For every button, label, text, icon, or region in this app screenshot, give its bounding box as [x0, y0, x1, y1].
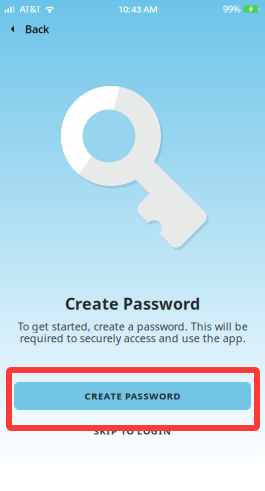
- staticText: CREATE PASSWORD: [84, 390, 181, 402]
- staticText: Create Password: [65, 293, 200, 314]
- staticText: Back: [25, 22, 49, 36]
- staticText: AT&T: [19, 3, 40, 15]
- button[interactable]: CREATE PASSWORD: [14, 382, 251, 410]
- button[interactable]: SKIP TO LOGIN: [72, 425, 192, 437]
- staticText: 99%: [223, 3, 241, 15]
- staticText: To get started, create a password. This …: [17, 319, 247, 345]
- staticText: 10:43 AM: [118, 3, 158, 15]
- button[interactable]: Back: [0, 18, 61, 40]
- staticText: SKIP TO LOGIN: [94, 425, 171, 437]
